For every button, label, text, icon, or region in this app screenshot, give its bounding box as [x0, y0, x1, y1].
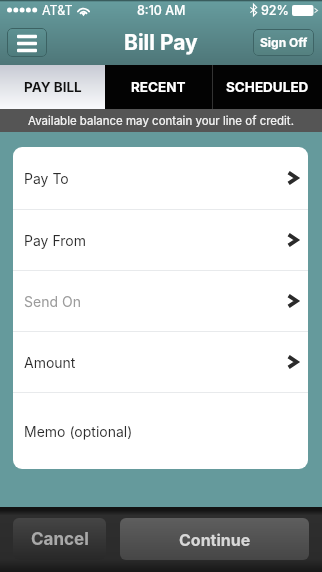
- staticText: 92%: [261, 3, 289, 18]
- button[interactable]: SCHEDULED: [213, 65, 322, 109]
- staticText: RECENT: [131, 79, 186, 95]
- button[interactable]: Menu: [7, 28, 47, 57]
- staticText: 8:10 AM: [137, 3, 186, 18]
- staticText: Pay From: [24, 232, 86, 249]
- button[interactable]: Pay From: [13, 210, 308, 270]
- staticText: Amount: [24, 354, 76, 371]
- button[interactable]: Sign Off: [253, 29, 314, 56]
- button[interactable]: PAY BILL: [0, 65, 105, 109]
- button[interactable]: Send On: [13, 271, 308, 331]
- staticText: Cancel: [31, 529, 89, 550]
- button[interactable]: Continue: [120, 518, 309, 560]
- button[interactable]: Pay To: [13, 147, 308, 209]
- staticText: PAY BILL: [24, 79, 82, 95]
- staticText: Sign Off: [260, 35, 308, 50]
- staticText: Available balance may contain your line …: [28, 114, 294, 128]
- staticText: Bill Pay: [124, 30, 198, 55]
- button[interactable]: Cancel: [13, 518, 106, 560]
- staticText: Memo (optional): [24, 423, 133, 440]
- staticText: SCHEDULED: [226, 79, 309, 95]
- button[interactable]: Amount: [13, 332, 308, 392]
- staticText: Continue: [179, 530, 251, 549]
- staticText: Pay To: [24, 170, 69, 187]
- staticText: AT&T: [42, 3, 73, 18]
- button[interactable]: RECENT: [105, 65, 212, 109]
- staticText: Send On: [24, 293, 81, 310]
- button[interactable]: Memo (optional): [13, 393, 308, 469]
